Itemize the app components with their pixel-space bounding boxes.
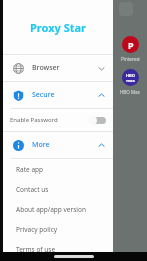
staticText: P — [128, 39, 134, 51]
staticText: Rate app — [16, 165, 44, 174]
button[interactable]: Enable Password — [3, 109, 113, 131]
staticText: Pinterest — [121, 56, 140, 62]
button[interactable]: More — [3, 132, 113, 158]
button[interactable]: Rate app — [3, 159, 113, 179]
staticText: HBO Max — [120, 89, 140, 95]
staticText: Browser — [32, 63, 97, 73]
button[interactable]: Privacy policy — [3, 219, 113, 239]
staticText: More — [32, 140, 97, 150]
button[interactable]: Secure — [3, 82, 113, 108]
staticText: Privacy policy — [16, 225, 58, 234]
button[interactable]: Contact us — [3, 179, 113, 199]
staticText: HBO max — [126, 73, 135, 83]
staticText: Proxy Star — [30, 20, 87, 35]
staticText: Terms of use — [16, 245, 56, 254]
staticText: Enable Password — [10, 116, 58, 124]
button[interactable]: Pinterest — [122, 36, 139, 53]
staticText: About app/app version — [16, 205, 86, 214]
button[interactable]: Browser — [3, 55, 113, 81]
staticText: Secure — [32, 90, 97, 100]
staticText: Contact us — [16, 185, 49, 194]
button[interactable]: Terms of use — [3, 239, 113, 259]
button[interactable]: HBO Max — [122, 69, 139, 86]
button[interactable]: About app/app version — [3, 199, 113, 219]
